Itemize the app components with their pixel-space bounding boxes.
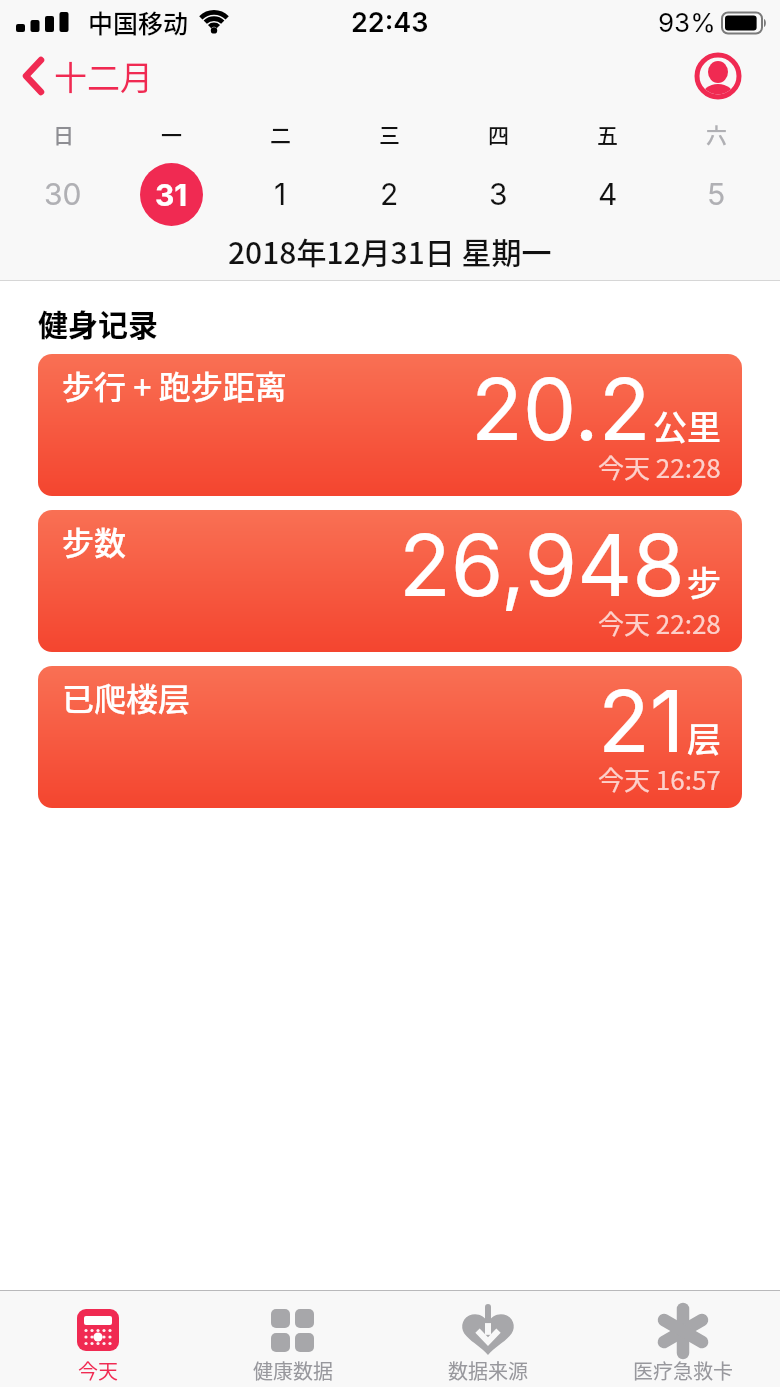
staticText: 93% <box>658 7 716 38</box>
button[interactable]: 步行 + 跑步距离 <box>38 354 742 496</box>
button[interactable]: 31 <box>117 160 226 228</box>
staticText: 步数 <box>62 518 127 564</box>
staticText: 今天 16:57 <box>598 760 721 798</box>
button[interactable]: 2 <box>335 160 444 228</box>
staticText: 4 <box>598 176 618 212</box>
staticText: 数据来源 <box>448 1356 528 1385</box>
staticText: 六 <box>706 119 727 149</box>
button[interactable]: 5 <box>662 160 771 228</box>
staticText: 医疗急救卡 <box>633 1356 733 1385</box>
staticText: 1 <box>274 176 287 212</box>
button[interactable]: 健康数据 <box>195 1291 390 1387</box>
staticText: 3 <box>489 176 508 212</box>
staticText: 26,948 <box>399 514 685 617</box>
staticText: 层 <box>687 713 721 762</box>
staticText: 十二月 <box>54 52 153 100</box>
button[interactable]: 今天 <box>0 1291 195 1387</box>
button[interactable]: 十二月 <box>22 52 153 100</box>
staticText: 日 <box>53 119 74 149</box>
staticText: 2018年12月31日 星期一 <box>228 229 552 272</box>
staticText: 30 <box>44 176 82 212</box>
button[interactable]: 数据来源 <box>390 1291 585 1387</box>
staticText: 二 <box>270 119 291 149</box>
staticText: 中国移动 <box>88 4 189 40</box>
staticText: 健康数据 <box>253 1356 333 1385</box>
staticText: 五 <box>597 119 618 149</box>
staticText: 2 <box>380 176 399 212</box>
button[interactable]: 1 <box>226 160 335 228</box>
button[interactable]: 30 <box>9 160 117 228</box>
staticText: 今天 <box>78 1356 118 1385</box>
button[interactable]: 步数 <box>38 510 742 652</box>
button[interactable]: 已爬楼层 <box>38 666 742 808</box>
staticText: 四 <box>488 119 509 149</box>
staticText: 健身记录 <box>38 301 158 344</box>
button[interactable] <box>694 52 742 100</box>
staticText: 公里 <box>653 401 721 450</box>
staticText: 20.2 <box>471 358 651 461</box>
staticText: 5 <box>707 176 726 212</box>
button[interactable]: 3 <box>444 160 553 228</box>
staticText: 今天 22:28 <box>598 448 721 486</box>
staticText: 一 <box>161 119 182 149</box>
staticText: 今天 22:28 <box>598 604 721 642</box>
staticText: 步 <box>687 557 721 606</box>
staticText: 22:43 <box>351 6 429 39</box>
staticText: 31 <box>155 177 188 213</box>
staticText: 步行 + 跑步距离 <box>62 362 287 408</box>
staticText: 21 <box>598 670 685 773</box>
staticText: 已爬楼层 <box>62 674 191 720</box>
staticText: 三 <box>379 119 400 149</box>
button[interactable]: 4 <box>553 160 662 228</box>
button[interactable]: 医疗急救卡 <box>585 1291 780 1387</box>
